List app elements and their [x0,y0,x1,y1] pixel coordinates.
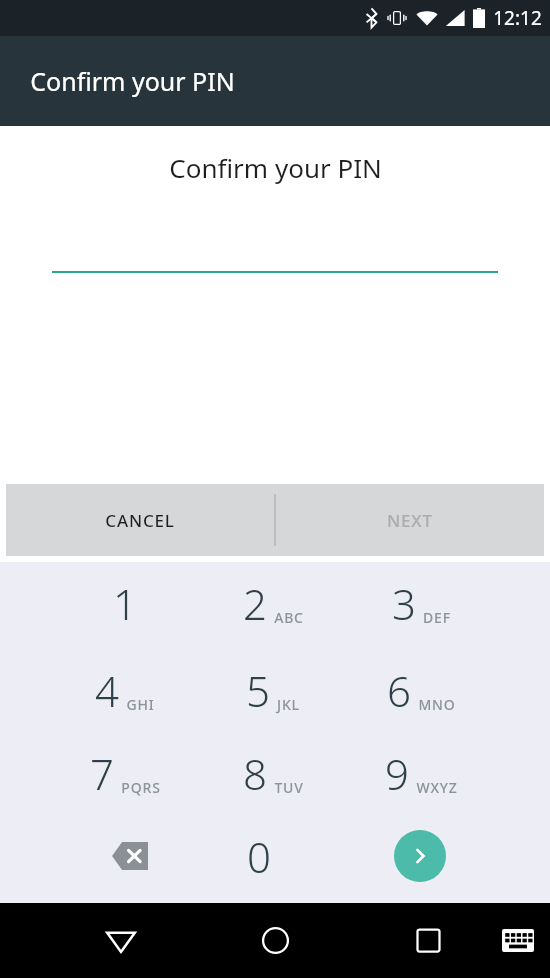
button[interactable]: 5 [188,652,358,728]
staticText: TUV [274,778,304,797]
staticText: Confirm your PIN [30,64,235,98]
button[interactable]: Delete [92,818,168,894]
button[interactable]: CANCEL [6,484,274,556]
staticText: DEF [423,608,451,627]
staticText: 12:12 [493,5,542,31]
button[interactable]: 4 [40,652,210,728]
staticText: 7 [90,745,114,802]
staticText: Confirm your PIN [169,150,382,185]
button[interactable]: 3 [336,565,506,641]
staticText: 1 [113,575,137,632]
button[interactable]: 6 [336,652,506,728]
staticText: 9 [385,745,409,802]
staticText: GHI [126,695,155,714]
staticText: MNO [418,695,456,714]
button[interactable]: 8 [188,735,358,811]
staticText: 8 [243,745,267,802]
staticText: 5 [246,662,270,719]
staticText: ABC [274,608,304,627]
staticText: PQRS [121,778,161,797]
staticText: CANCEL [105,509,175,532]
staticText: 4 [95,662,119,719]
button[interactable]: 9 [336,735,506,811]
button[interactable]: NEXT [276,484,544,556]
button[interactable]: Recent apps [393,903,463,978]
staticText: 6 [387,662,411,719]
staticText: WXYZ [416,778,458,797]
button[interactable]: Next [382,818,458,894]
button[interactable]: 2 [188,565,358,641]
button[interactable]: 0 [215,818,303,894]
staticText: 0 [247,828,271,885]
staticText: JKL [277,695,300,714]
staticText: 3 [392,575,416,632]
staticText: 2 [243,575,267,632]
button[interactable]: Home [240,903,310,978]
staticText: NEXT [387,509,433,532]
button[interactable]: 7 [40,735,210,811]
button[interactable]: Back [86,903,156,978]
button[interactable]: 1 [40,565,210,641]
button[interactable]: Switch keyboard [490,903,546,978]
